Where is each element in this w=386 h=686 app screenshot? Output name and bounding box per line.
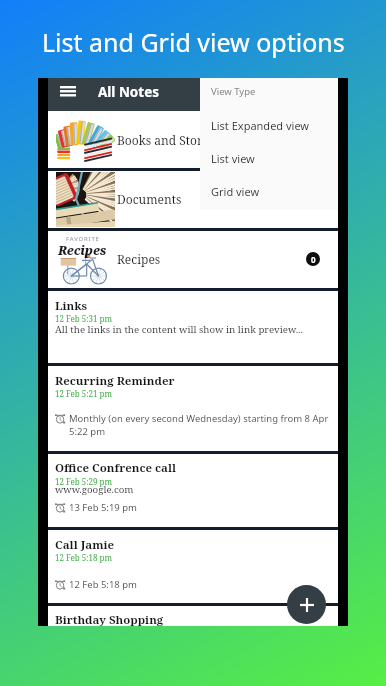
staticText: Grid view xyxy=(211,184,260,199)
staticText: All the links in the content will show i… xyxy=(55,323,303,336)
staticText: 12 Feb 5:18 pm xyxy=(69,578,137,591)
staticText: Call Jamie xyxy=(55,537,115,553)
staticText: 0 xyxy=(311,254,316,265)
staticText: 12 Feb 5:31 pm xyxy=(55,313,112,324)
staticText: www.google.com xyxy=(55,483,134,496)
staticText: List and Grid view options xyxy=(42,25,345,59)
button[interactable]: Recurring Reminder xyxy=(48,364,338,452)
button[interactable]: Documents xyxy=(48,169,338,229)
staticText: List view xyxy=(211,151,255,166)
staticText: Recipes xyxy=(58,242,107,258)
button[interactable]: Birthday Shopping xyxy=(48,604,338,626)
staticText: View Type xyxy=(211,85,256,98)
staticText: Monthly (on every second Wednesday) star… xyxy=(69,412,329,438)
staticText: Links xyxy=(55,298,88,314)
button[interactable]: Menu xyxy=(48,78,88,111)
staticText: Recipes xyxy=(117,251,161,267)
button[interactable]: Books and Stories xyxy=(48,111,338,169)
staticText: 12 Feb 5:21 pm xyxy=(55,388,112,399)
staticText: List Expanded view xyxy=(211,118,310,133)
staticText: 12 Feb 5:18 pm xyxy=(55,552,112,563)
staticText: 13 Feb 5:19 pm xyxy=(69,501,137,514)
button[interactable]: Add note xyxy=(287,585,326,624)
staticText: Documents xyxy=(117,191,182,207)
staticText: All Notes xyxy=(98,83,160,101)
button[interactable]: List view xyxy=(200,142,338,175)
staticText: 12 Feb 5:29 pm xyxy=(55,476,112,487)
button[interactable]: Grid view xyxy=(200,175,338,208)
staticText: Office Confrence call xyxy=(55,460,177,476)
staticText: FAVORITE xyxy=(66,235,100,243)
button[interactable]: Office Confrence call xyxy=(48,452,338,528)
staticText: Recurring Reminder xyxy=(55,373,175,389)
button[interactable]: Call Jamie xyxy=(48,528,338,604)
button[interactable]: FAVORITE xyxy=(48,229,338,289)
button[interactable]: List Expanded view xyxy=(200,109,338,142)
button[interactable]: Links xyxy=(48,289,338,364)
staticText: Books and Stories xyxy=(117,132,219,148)
staticText: Birthday Shopping xyxy=(55,612,164,628)
